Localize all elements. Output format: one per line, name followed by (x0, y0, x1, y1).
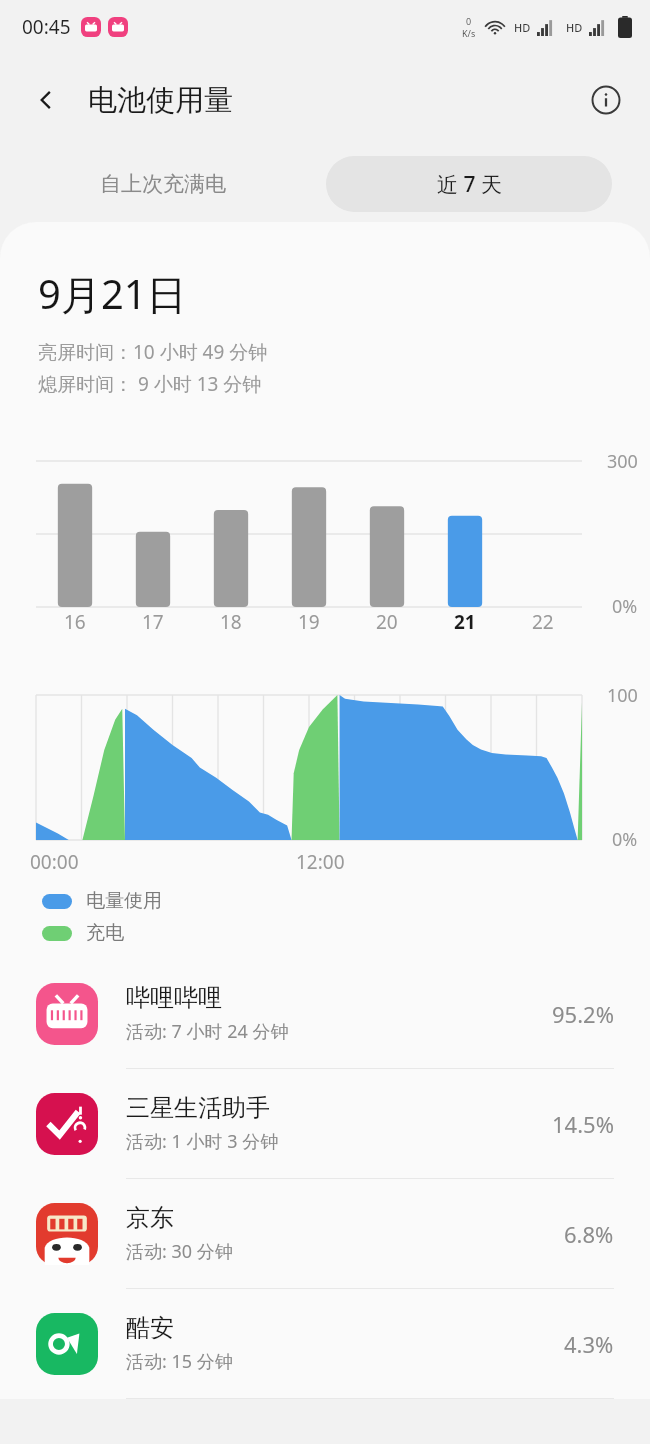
staticText: 00:45 (22, 14, 71, 40)
staticText: 0% (612, 594, 638, 619)
staticText: 熄屏时间： 9 小时 13 分钟 (38, 371, 262, 397)
staticText: 95.2% (552, 999, 614, 1029)
staticText: 哔哩哔哩 (126, 983, 222, 1013)
staticText: 三星生活助手 (126, 1093, 270, 1123)
staticText: 21 (454, 609, 476, 635)
staticText: 0 (466, 15, 472, 27)
staticText: HD (566, 20, 583, 35)
button[interactable]: 哔哩哔哩 (0, 959, 650, 1068)
staticText: 100 (607, 683, 638, 708)
staticText: 17 (142, 609, 164, 635)
staticText: 14.5% (552, 1109, 614, 1139)
staticText: 6.8% (564, 1219, 614, 1249)
staticText: 300 (607, 449, 638, 474)
staticText: 22 (532, 609, 554, 635)
button[interactable]: 酷安 (0, 1289, 650, 1398)
button[interactable]: 自上次充满电 (0, 156, 326, 212)
staticText: 18 (220, 609, 242, 635)
staticText: 活动: 7 小时 24 分钟 (126, 1019, 289, 1044)
staticText: 0% (612, 827, 638, 852)
staticText: 充电 (86, 921, 124, 945)
staticText: 活动: 30 分钟 (126, 1239, 233, 1264)
staticText: 9月21日 (38, 266, 187, 321)
staticText: 近 7 天 (437, 170, 502, 199)
staticText: 亮屏时间：10 小时 49 分钟 (38, 339, 268, 365)
staticText: 19 (298, 609, 320, 635)
button[interactable]: Back (22, 76, 70, 124)
button[interactable]: 近 7 天 (326, 156, 612, 212)
staticText: 12:00 (296, 849, 345, 875)
staticText: 酷安 (126, 1313, 174, 1343)
button[interactable]: 三星生活助手 (0, 1069, 650, 1178)
staticText: 4.3% (564, 1329, 614, 1359)
staticText: 电量使用 (86, 889, 162, 913)
staticText: 活动: 15 分钟 (126, 1349, 233, 1374)
staticText: HD (514, 20, 531, 35)
button[interactable]: 京东 (0, 1179, 650, 1288)
staticText: 00:00 (30, 849, 79, 875)
staticText: 电池使用量 (88, 82, 233, 119)
staticText: K/s (462, 27, 476, 39)
staticText: 京东 (126, 1203, 174, 1233)
staticText: 20 (376, 609, 398, 635)
staticText: 16 (64, 609, 86, 635)
button[interactable]: Information (582, 76, 630, 124)
staticText: 自上次充满电 (100, 171, 226, 197)
staticText: 活动: 1 小时 3 分钟 (126, 1129, 279, 1154)
